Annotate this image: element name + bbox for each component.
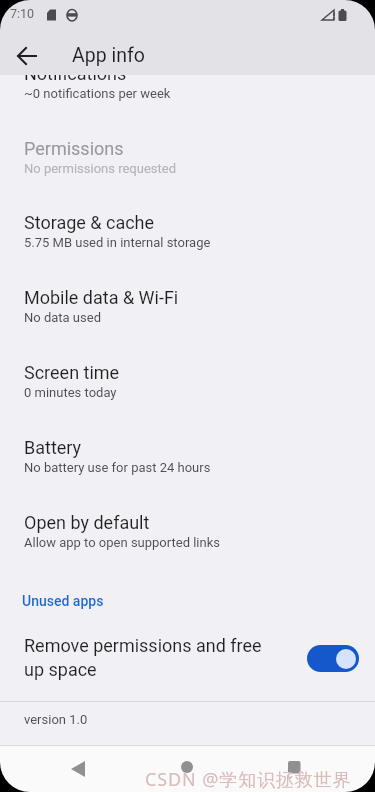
staticText: Notifications: [24, 63, 127, 84]
button[interactable]: [67, 757, 91, 781]
staticText: App info: [72, 44, 145, 67]
button[interactable]: Notifications: [0, 63, 375, 135]
staticText: No data used: [24, 310, 101, 325]
staticText: Mobile data & Wi‑Fi: [24, 287, 179, 308]
staticText: Unused apps: [22, 593, 104, 609]
staticText: Permissions: [24, 138, 124, 159]
staticText: version 1.0: [24, 712, 88, 727]
staticText: Remove permissions and free up space: [24, 635, 286, 680]
staticText: No permissions requested: [24, 161, 176, 176]
staticText: 0 minutes today: [24, 385, 117, 400]
button[interactable]: [175, 755, 199, 779]
button[interactable]: Mobile data & Wi‑Fi: [0, 287, 375, 359]
button[interactable]: Battery: [0, 437, 375, 509]
staticText: Open by default: [24, 512, 150, 533]
staticText: ~0 notifications per week: [24, 86, 171, 101]
staticText: 7:10: [10, 6, 35, 21]
button[interactable]: [307, 645, 359, 672]
staticText: Screen time: [24, 362, 120, 383]
staticText: Allow app to open supported links: [24, 535, 220, 550]
button[interactable]: Storage & cache: [0, 212, 375, 284]
staticText: Battery: [24, 437, 82, 458]
button[interactable]: Permissions: [0, 138, 375, 210]
button[interactable]: [9, 38, 45, 74]
button[interactable]: Screen time: [0, 362, 375, 434]
staticText: CSDN @学知识拯救世界: [145, 767, 352, 792]
button[interactable]: Remove permissions and free up space: [0, 628, 375, 696]
button[interactable]: Open by default: [0, 512, 375, 584]
staticText: 5.75 MB used in internal storage: [24, 235, 211, 250]
staticText: Storage & cache: [24, 212, 155, 233]
staticText: No battery use for past 24 hours: [24, 460, 211, 475]
button[interactable]: [282, 755, 306, 779]
